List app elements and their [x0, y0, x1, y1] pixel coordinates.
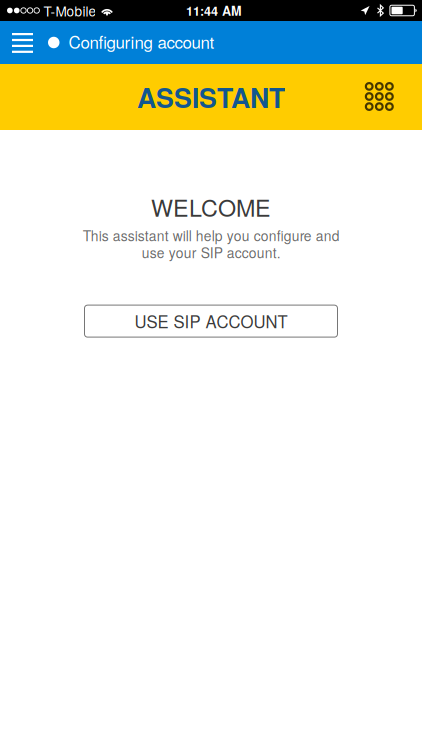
staticText: T-Mobile — [43, 1, 96, 20]
staticText: WELCOME — [151, 190, 271, 223]
staticText: Configuring account — [68, 29, 214, 54]
staticText: ASSISTANT — [137, 78, 285, 116]
staticText: 11:44 AM — [186, 1, 242, 19]
button[interactable]: Menu — [0, 21, 48, 64]
button[interactable]: USE SIP ACCOUNT — [84, 305, 337, 337]
staticText: This assistant will help you configure a… — [82, 225, 339, 262]
button[interactable]: Dialpad — [351, 63, 422, 131]
staticText: USE SIP ACCOUNT — [134, 309, 287, 333]
